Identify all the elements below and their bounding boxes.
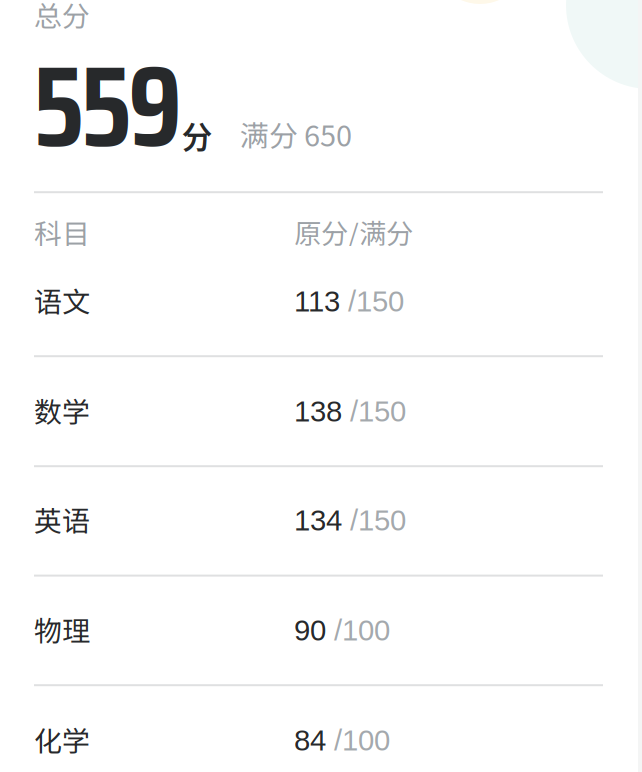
staticText: /150 (342, 504, 406, 537)
staticText: 总分 (34, 0, 90, 34)
staticText: 化学 (34, 719, 90, 759)
staticText: /150 (340, 285, 404, 318)
staticText: 559 (33, 17, 182, 195)
staticText: 英语 (34, 499, 90, 539)
staticText: /150 (342, 395, 406, 428)
staticText: 数学 (34, 390, 90, 430)
staticText: 113 (294, 285, 340, 318)
button[interactable]: 语文 (0, 0, 638, 110)
button[interactable]: 物理 (0, 0, 638, 110)
staticText: 138 (294, 395, 342, 428)
staticText: 语文 (34, 280, 90, 320)
button[interactable]: 数学 (0, 0, 638, 110)
staticText: 分 (181, 113, 212, 157)
button[interactable]: 化学 (0, 0, 638, 110)
staticText: 84 (294, 724, 326, 757)
staticText: 科目 (34, 212, 90, 252)
staticText: /100 (326, 724, 390, 757)
staticText: /100 (326, 614, 390, 647)
staticText: 原分/满分 (294, 212, 413, 252)
button[interactable]: 英语 (0, 0, 638, 110)
staticText: 物理 (34, 609, 90, 649)
staticText: 90 (294, 614, 326, 647)
staticText: 满分 650 (240, 113, 352, 155)
staticText: 134 (294, 504, 342, 537)
